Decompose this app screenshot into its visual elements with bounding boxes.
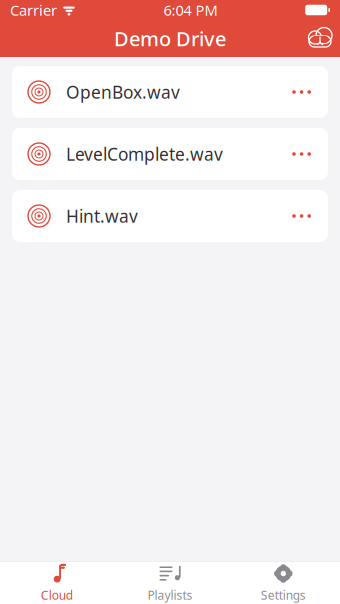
staticText: Demo Drive [114, 25, 226, 52]
button[interactable]: Hint.wav [12, 190, 328, 242]
staticText: 6:04 PM [164, 0, 218, 20]
button[interactable]: OpenBox.wav [12, 66, 328, 118]
staticText: Cloud [41, 587, 73, 603]
button[interactable]: Download from cloud [300, 20, 340, 57]
button[interactable]: Settings [227, 562, 340, 604]
button[interactable]: Cloud [0, 562, 113, 604]
button[interactable]: LevelComplete.wav [12, 128, 328, 180]
staticText: LevelComplete.wav [66, 142, 223, 165]
staticText: Settings [261, 587, 306, 603]
staticText: OpenBox.wav [66, 80, 180, 103]
staticText: Hint.wav [66, 204, 138, 227]
staticText: Carrier [10, 0, 57, 20]
button[interactable]: Playlists [113, 562, 227, 604]
staticText: Playlists [147, 587, 192, 603]
